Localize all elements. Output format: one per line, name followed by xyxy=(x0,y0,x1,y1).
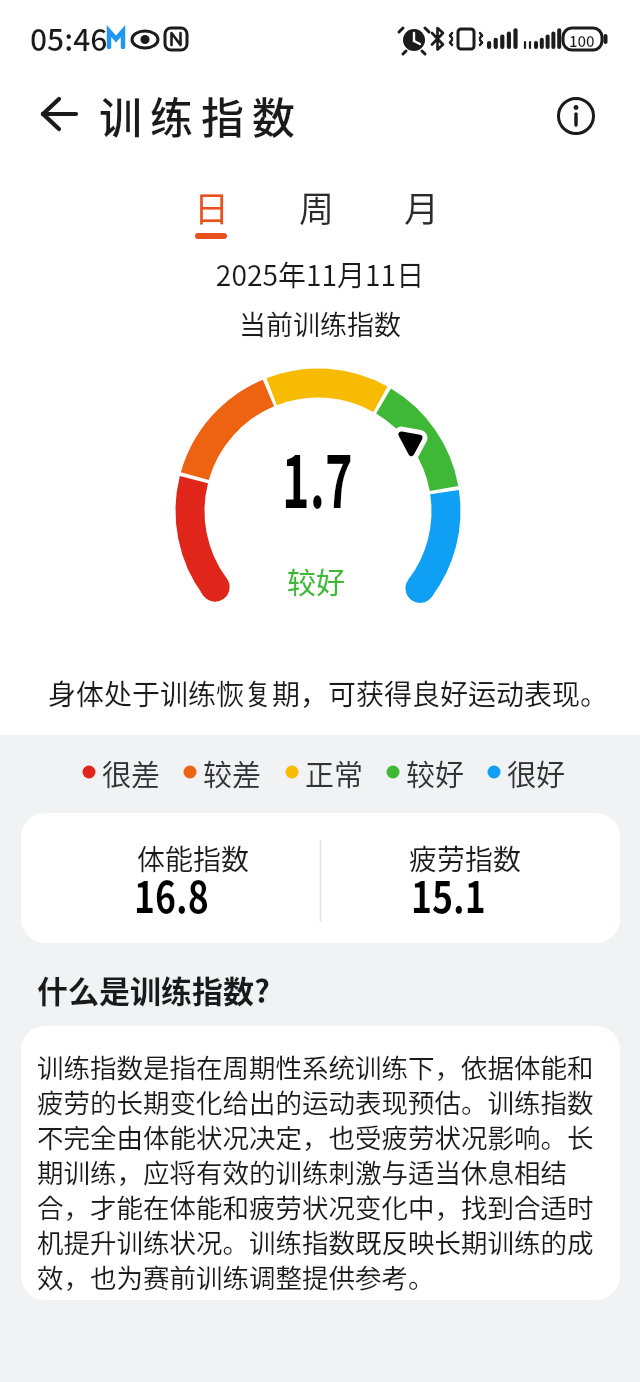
staticText: 正常 xyxy=(305,752,364,794)
staticText: 什么是训练指数? xyxy=(37,967,270,1012)
staticText: 较好 xyxy=(0,560,636,602)
staticText: 较好 xyxy=(406,752,465,794)
button[interactable]: 日 xyxy=(177,180,247,232)
staticText: 身体处于训练恢复期，可获得良好运动表现。 xyxy=(8,673,640,714)
staticText: 100 xyxy=(569,30,595,52)
staticText: 16.8 xyxy=(134,863,209,925)
button[interactable]: 周 xyxy=(282,180,352,232)
button[interactable]: 月 xyxy=(387,180,457,232)
staticText: 体能指数 xyxy=(137,838,250,879)
staticText: 较差 xyxy=(203,752,262,794)
button[interactable] xyxy=(548,88,604,144)
staticText: 1.7 xyxy=(282,424,353,524)
staticText: 月 xyxy=(404,181,440,232)
staticText: 训练指数是指在周期性系统训练下，依据体能和疲劳的长期变化给出的运动表现预估。训练… xyxy=(37,1047,612,1295)
staticText: 周 xyxy=(299,181,335,232)
staticText: 日 xyxy=(194,181,230,232)
button[interactable] xyxy=(28,88,88,144)
staticText: 15.1 xyxy=(411,863,486,925)
staticText: 疲劳指数 xyxy=(409,838,522,879)
staticText: 2025年11月11日 xyxy=(0,254,640,295)
staticText: 05:46 xyxy=(30,16,108,59)
staticText: 训练指数 xyxy=(99,84,303,146)
staticText: 很好 xyxy=(507,752,566,794)
staticText: 很差 xyxy=(102,752,161,794)
staticText: 当前训练指数 xyxy=(0,304,640,343)
